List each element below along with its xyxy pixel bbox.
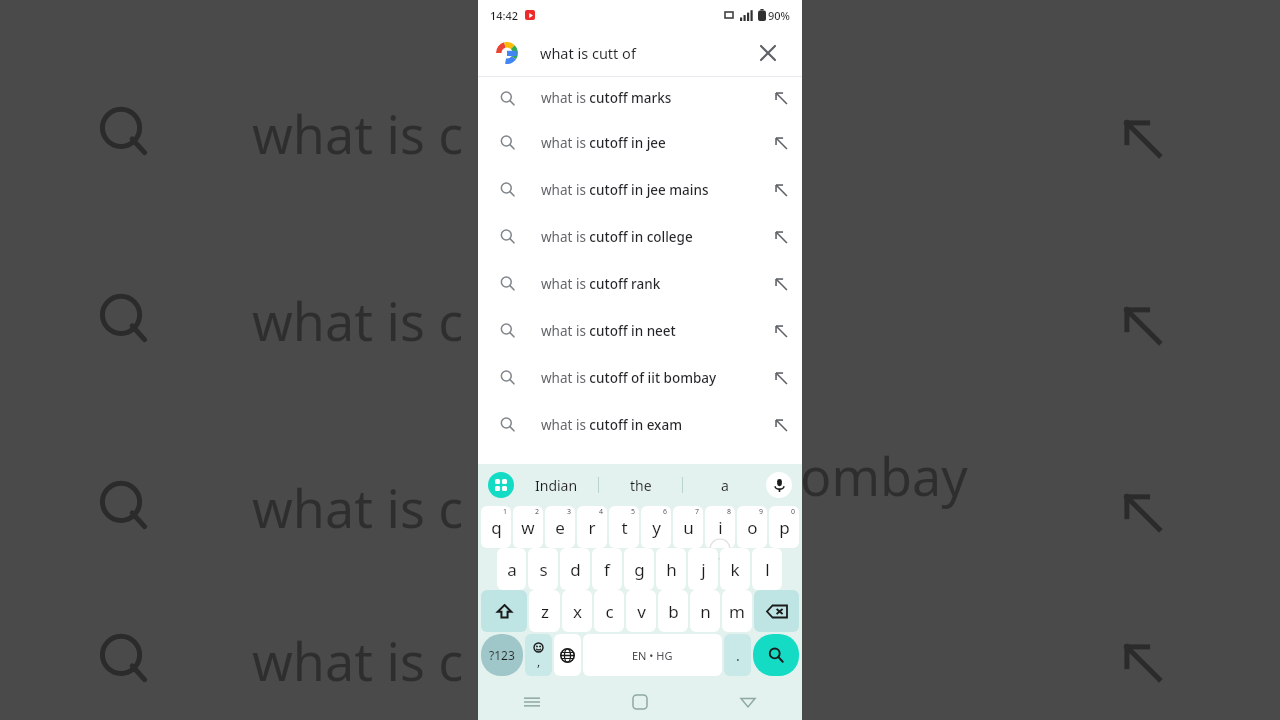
button[interactable]: Search [753,634,799,676]
button[interactable]: Insert suggestion [764,173,798,207]
staticText: i [718,516,723,539]
staticText: . [736,646,740,665]
button[interactable]: Keyboard apps [488,472,514,498]
button[interactable]: s [528,548,558,590]
button[interactable]: b [658,590,688,632]
button[interactable]: j [688,548,718,590]
button[interactable]: the [599,464,682,506]
staticText: what is c [252,472,464,543]
staticText: 90% [768,8,790,23]
button[interactable]: Insert suggestion [764,361,798,395]
button[interactable]: Indian [514,464,598,506]
staticText: 9 [759,507,764,517]
button[interactable]: d [560,548,590,590]
button[interactable]: u [673,506,703,548]
button[interactable]: Backspace [754,590,799,632]
staticText: 5 [631,507,636,517]
button[interactable]: EN • HG [583,634,722,676]
staticText: g [634,558,645,581]
button[interactable]: p [769,506,799,548]
button[interactable]: k [720,548,750,590]
button[interactable]: Recents [478,684,586,720]
button[interactable]: t [609,506,639,548]
staticText: o [747,516,758,539]
staticText: , [537,653,541,669]
staticText: 14:42 [490,8,519,23]
staticText: what is cutoff rank [541,275,661,293]
staticText: s [539,558,548,581]
staticText: the [630,476,652,495]
button[interactable]: Insert suggestion [764,126,798,160]
button[interactable]: Shift [481,590,527,632]
button[interactable]: Home [586,684,694,720]
staticText: what is c [252,625,464,696]
staticText: what is cutoff in college [541,228,693,246]
button[interactable]: Clear search [752,37,784,69]
staticText: Indian [535,476,578,495]
button[interactable]: what is cutoff in jee [478,119,802,166]
staticText: what is cutoff in jee [541,134,666,152]
button[interactable]: w [513,506,543,548]
button[interactable]: Back [694,684,802,720]
button[interactable]: Insert suggestion [764,81,798,115]
button[interactable]: e [545,506,575,548]
button[interactable]: g [624,548,654,590]
button[interactable]: what is cutoff in exam [478,401,802,448]
staticText: h [666,558,677,581]
button[interactable]: f [592,548,622,590]
button[interactable]: Insert suggestion [764,267,798,301]
staticText: c [605,600,614,623]
staticText: what is cutt of [540,43,636,63]
staticText: 6 [663,507,668,517]
button[interactable]: Change language [554,634,581,676]
button[interactable]: i [705,506,735,548]
staticText: m [729,600,745,623]
staticText: b [668,600,679,623]
button[interactable]: Voice input [766,472,792,498]
button[interactable]: h [656,548,686,590]
button[interactable]: Emoji [525,634,552,676]
button[interactable]: what is cutoff rank [478,260,802,307]
button[interactable]: what is cutoff in neet [478,307,802,354]
staticText: 2 [535,507,540,517]
button[interactable]: ?123 [481,634,523,676]
staticText: a [721,476,729,495]
staticText: y [652,516,661,539]
button[interactable]: Insert suggestion [764,314,798,348]
staticText: t [621,516,628,539]
staticText: 7 [695,507,700,517]
button[interactable]: r [577,506,607,548]
button[interactable]: v [626,590,656,632]
button[interactable]: . [724,634,751,676]
staticText: d [570,558,581,581]
staticText: what is cutoff marks [541,89,672,107]
button[interactable]: z [529,590,560,632]
button[interactable]: a [497,548,526,590]
button[interactable]: n [690,590,720,632]
staticText: z [541,600,549,623]
staticText: 3 [567,507,572,517]
button[interactable]: what is cutoff marks [478,77,802,119]
staticText: a [507,558,517,581]
button[interactable]: o [737,506,767,548]
staticText: 8 [727,507,732,517]
staticText: v [637,600,646,623]
staticText: p [779,516,790,539]
staticText: 4 [599,507,604,517]
staticText: w [521,516,535,539]
staticText: x [573,600,582,623]
button[interactable]: Insert suggestion [764,220,798,254]
button[interactable]: what is cutoff in jee mains [478,166,802,213]
button[interactable]: q [481,506,511,548]
staticText: 0 [791,507,796,517]
button[interactable]: y [641,506,671,548]
button[interactable]: what is cutoff in college [478,213,802,260]
button[interactable]: l [752,548,782,590]
button[interactable]: c [594,590,624,632]
button[interactable]: Insert suggestion [764,408,798,442]
button[interactable]: m [722,590,752,632]
button[interactable]: a [683,464,766,506]
staticText: what is cutoff in jee mains [541,181,709,199]
button[interactable]: x [562,590,592,632]
button[interactable]: what is cutoff of iit bombay [478,354,802,401]
